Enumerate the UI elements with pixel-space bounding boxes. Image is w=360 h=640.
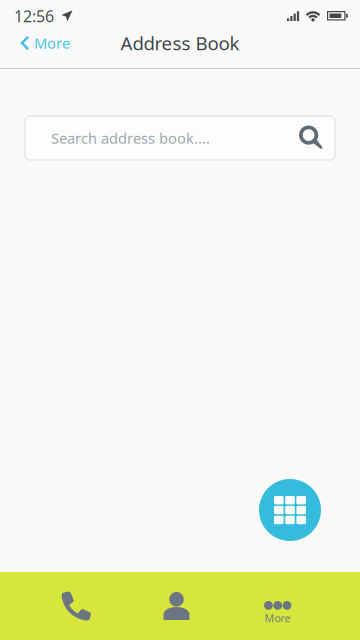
- button[interactable]: Keypad: [25, 572, 126, 640]
- button[interactable]: Search address book....: [25, 116, 335, 160]
- button[interactable]: More: [0, 23, 82, 62]
- staticText: Address Book: [120, 31, 239, 55]
- staticText: More: [264, 611, 290, 625]
- button[interactable]: More: [227, 572, 328, 640]
- button[interactable]: Keypad: [259, 479, 321, 541]
- staticText: 12:56: [14, 5, 54, 27]
- button[interactable]: Contacts: [126, 572, 227, 640]
- staticText: More: [34, 33, 70, 53]
- staticText: Search address book....: [51, 128, 210, 148]
